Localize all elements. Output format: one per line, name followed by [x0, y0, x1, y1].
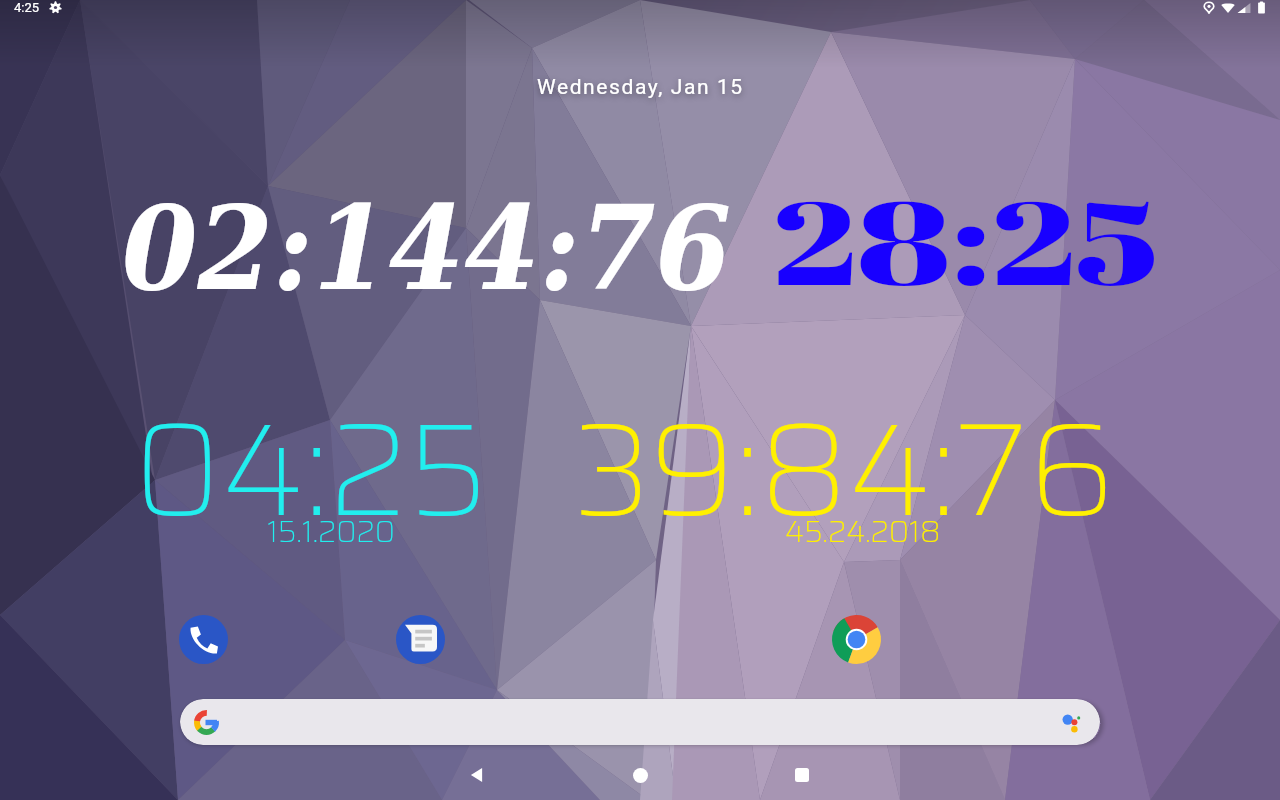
staticText: 4:25 — [14, 0, 40, 15]
staticText: 15.1.2020 — [267, 508, 395, 555]
button[interactable]: Recents — [778, 751, 826, 799]
staticText: 04:25 — [133, 366, 489, 572]
button[interactable]: Messages — [396, 615, 445, 664]
button[interactable]: Home — [616, 751, 664, 799]
button[interactable] — [180, 699, 1100, 745]
button[interactable]: Back — [453, 751, 501, 799]
button[interactable]: Phone — [179, 615, 228, 664]
staticText: 39:84:76 — [573, 366, 1113, 572]
button[interactable]: Chrome — [832, 615, 881, 664]
staticText: Wednesday, Jan 15 — [537, 75, 744, 100]
staticText: 02:144:76 — [122, 180, 731, 316]
staticText: 28:25 — [772, 160, 1159, 319]
staticText: 45.24.2018 — [785, 508, 941, 555]
